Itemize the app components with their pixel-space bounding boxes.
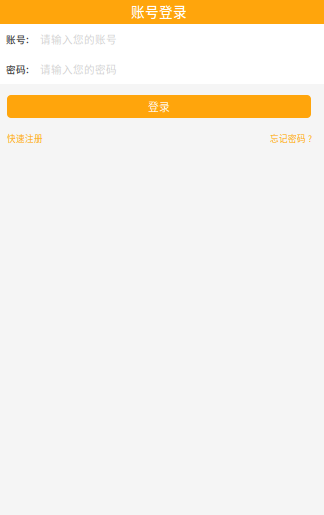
staticText: 快速注册: [7, 132, 43, 144]
button[interactable]: 密码:: [0, 54, 324, 84]
staticText: 登录: [148, 99, 170, 114]
staticText: 忘记密码 ?: [270, 132, 312, 144]
staticText: 账号登录: [131, 1, 187, 21]
button[interactable]: 忘记密码 ?: [270, 132, 312, 144]
staticText: 请输入您的密码: [40, 61, 117, 77]
button[interactable]: 登录: [7, 95, 311, 118]
staticText: 账号:: [6, 32, 29, 46]
button[interactable]: 快速注册: [7, 132, 43, 144]
staticText: 请输入您的账号: [40, 31, 117, 47]
button[interactable]: 账号:: [0, 24, 324, 54]
staticText: 密码:: [6, 62, 29, 76]
